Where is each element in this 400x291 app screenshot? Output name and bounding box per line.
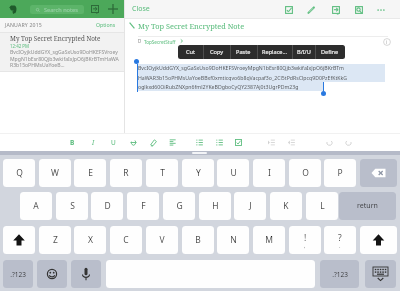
staticText: D — [104, 200, 111, 212]
button[interactable]: C — [110, 226, 142, 254]
staticText: I — [92, 138, 95, 147]
staticText: Define — [321, 48, 339, 56]
staticText: P — [337, 167, 343, 179]
staticText: A — [33, 200, 39, 212]
button[interactable]: F — [127, 192, 159, 220]
staticText: Search notes — [44, 6, 78, 14]
staticText: M — [265, 234, 273, 246]
button[interactable]: Redo — [339, 134, 357, 151]
staticText: W — [51, 167, 59, 179]
button[interactable]: Emoji — [37, 260, 67, 288]
button[interactable]: Attach — [302, 1, 319, 18]
button[interactable]: Checklist — [280, 1, 297, 18]
staticText: HaWAR3b15oPHMsUaYoeBBxf0xmticqvo6b8qVacp… — [138, 74, 348, 81]
button[interactable]: M — [253, 226, 285, 254]
staticText: Z — [53, 234, 58, 246]
button[interactable]: Define — [315, 45, 345, 59]
button[interactable]: Options — [96, 21, 116, 28]
button[interactable]: .?123 — [3, 260, 33, 288]
button[interactable]: B — [63, 134, 81, 151]
button[interactable]: O — [289, 159, 321, 187]
staticText: F — [141, 200, 146, 212]
button[interactable]: Shift — [360, 226, 397, 254]
staticText: K — [283, 200, 289, 212]
button[interactable]: ! — [289, 226, 321, 254]
button[interactable]: Checkbox list — [229, 134, 247, 151]
button[interactable]: T — [146, 159, 178, 187]
staticText: oglkxd60OiRubZNXpn6fml2YKeBDgboCyQY2387A… — [138, 83, 299, 90]
button[interactable]: R — [110, 159, 142, 187]
staticText: Cut — [186, 48, 196, 56]
button[interactable]: Note info — [383, 38, 391, 46]
button[interactable]: Y — [182, 159, 214, 187]
button[interactable]: Shift — [3, 226, 35, 254]
button[interactable]: V — [146, 226, 178, 254]
button[interactable]: Search notes — [30, 5, 84, 14]
staticText: .?123 — [10, 270, 26, 279]
button[interactable]: Copy — [203, 45, 230, 59]
button[interactable]: D — [91, 192, 123, 220]
button[interactable]: .?123 — [320, 260, 359, 288]
button[interactable]: Cut — [178, 45, 203, 59]
button[interactable]: P — [324, 159, 356, 187]
button[interactable]: Highlight — [144, 134, 162, 151]
button[interactable]: L — [306, 192, 338, 220]
button[interactable]: ? — [324, 226, 356, 254]
button[interactable]: New note — [88, 2, 101, 15]
button[interactable]: Strikethrough — [124, 134, 142, 151]
button[interactable]: I — [84, 134, 102, 151]
button[interactable]: Undo — [320, 134, 338, 151]
button[interactable]: U — [104, 134, 122, 151]
staticText: B/I/U — [297, 48, 311, 56]
button[interactable]: More options — [372, 1, 389, 18]
button[interactable]: New — [106, 2, 120, 16]
button[interactable]: Close — [132, 4, 150, 14]
button[interactable]: B/I/U — [292, 45, 315, 59]
button[interactable]: N — [217, 226, 249, 254]
button[interactable]: U — [217, 159, 249, 187]
button[interactable]: Evernote — [9, 5, 17, 14]
staticText: ? — [338, 232, 342, 244]
staticText: Q — [16, 167, 23, 179]
button[interactable]: Outdent — [282, 134, 300, 151]
button[interactable]: return — [339, 192, 396, 220]
button[interactable]: S — [56, 192, 88, 220]
button[interactable]: Q — [3, 159, 35, 187]
staticText: V — [159, 234, 165, 246]
staticText: My Top Secret Encrypted Note — [138, 21, 245, 31]
button[interactable]: W — [39, 159, 71, 187]
button[interactable]: I — [253, 159, 285, 187]
button[interactable]: Find in note — [350, 1, 367, 18]
staticText: X — [88, 234, 93, 246]
button[interactable]: Replace... — [257, 45, 292, 59]
button[interactable]: Bulleted list — [210, 134, 228, 151]
button[interactable]: Backspace — [360, 159, 397, 187]
button[interactable]: Numbered list — [190, 134, 208, 151]
button[interactable]: Paste — [230, 45, 257, 59]
button[interactable]: Dictate — [71, 260, 101, 288]
button[interactable]: Indent — [262, 134, 280, 151]
staticText: I — [268, 167, 271, 179]
staticText: R — [123, 167, 129, 179]
staticText: , — [304, 242, 306, 249]
button[interactable]: E — [74, 159, 106, 187]
button[interactable]: Paragraph style — [163, 134, 181, 151]
button[interactable]: A — [20, 192, 52, 220]
staticText: T — [160, 167, 165, 179]
button[interactable]: B — [182, 226, 214, 254]
button[interactable]: Hide keyboard — [365, 260, 396, 288]
button[interactable]: J — [234, 192, 266, 220]
staticText: BvcIOyjkUddGYX_sgGaSxUso9DoHKEFSVroeyMpg… — [10, 49, 119, 68]
staticText: i — [386, 39, 388, 45]
button[interactable]: K — [270, 192, 302, 220]
staticText: U — [230, 167, 237, 179]
button[interactable]: Z — [39, 226, 71, 254]
button[interactable]: Share — [327, 1, 344, 18]
staticText: . — [339, 242, 341, 249]
button[interactable]: G — [163, 192, 195, 220]
button[interactable]: My Top Secret Encrypted Note — [0, 33, 124, 72]
staticText: E — [88, 167, 93, 179]
button[interactable]: H — [199, 192, 231, 220]
button[interactable]: X — [74, 226, 106, 254]
